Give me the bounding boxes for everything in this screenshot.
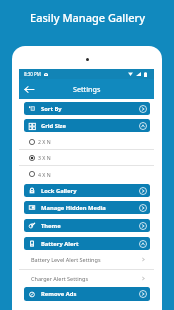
staticText: 2 X N (38, 138, 51, 145)
staticText: Manage Hidden Media (41, 204, 106, 212)
staticText: Grid Size (41, 122, 66, 130)
staticText: Easily Manage Gallery (30, 10, 145, 25)
staticText: Charger Alert Settings (31, 275, 89, 282)
button[interactable]: Grid Size (24, 119, 150, 132)
staticText: Theme (41, 222, 61, 230)
button[interactable]: Sort By (24, 102, 150, 115)
button[interactable]: Back (23, 83, 36, 96)
button[interactable]: Battery Alert (24, 237, 150, 250)
staticText: Lock Gallery (41, 187, 77, 195)
button[interactable]: 4 X N (19, 166, 154, 182)
staticText: 8:30 PM (24, 71, 41, 77)
staticText: Battery Level Alert Settings (31, 256, 101, 263)
button[interactable]: Battery Level Alert Settings (19, 250, 154, 269)
staticText: 3 X N (38, 154, 51, 161)
staticText: Settings (73, 84, 101, 94)
button[interactable]: Lock Gallery (24, 184, 150, 197)
staticText: Remove Ads (41, 290, 77, 298)
staticText: Sort By (41, 105, 62, 113)
button[interactable]: Remove Ads (24, 287, 150, 301)
staticText: Battery Alert (41, 240, 79, 248)
button[interactable]: 2 X N (19, 134, 154, 149)
button[interactable]: 3 X N (19, 150, 154, 165)
button[interactable]: Manage Hidden Media (24, 201, 150, 214)
staticText: 4 X N (38, 171, 51, 178)
button[interactable]: Theme (24, 219, 150, 232)
button[interactable]: Charger Alert Settings (19, 270, 154, 287)
